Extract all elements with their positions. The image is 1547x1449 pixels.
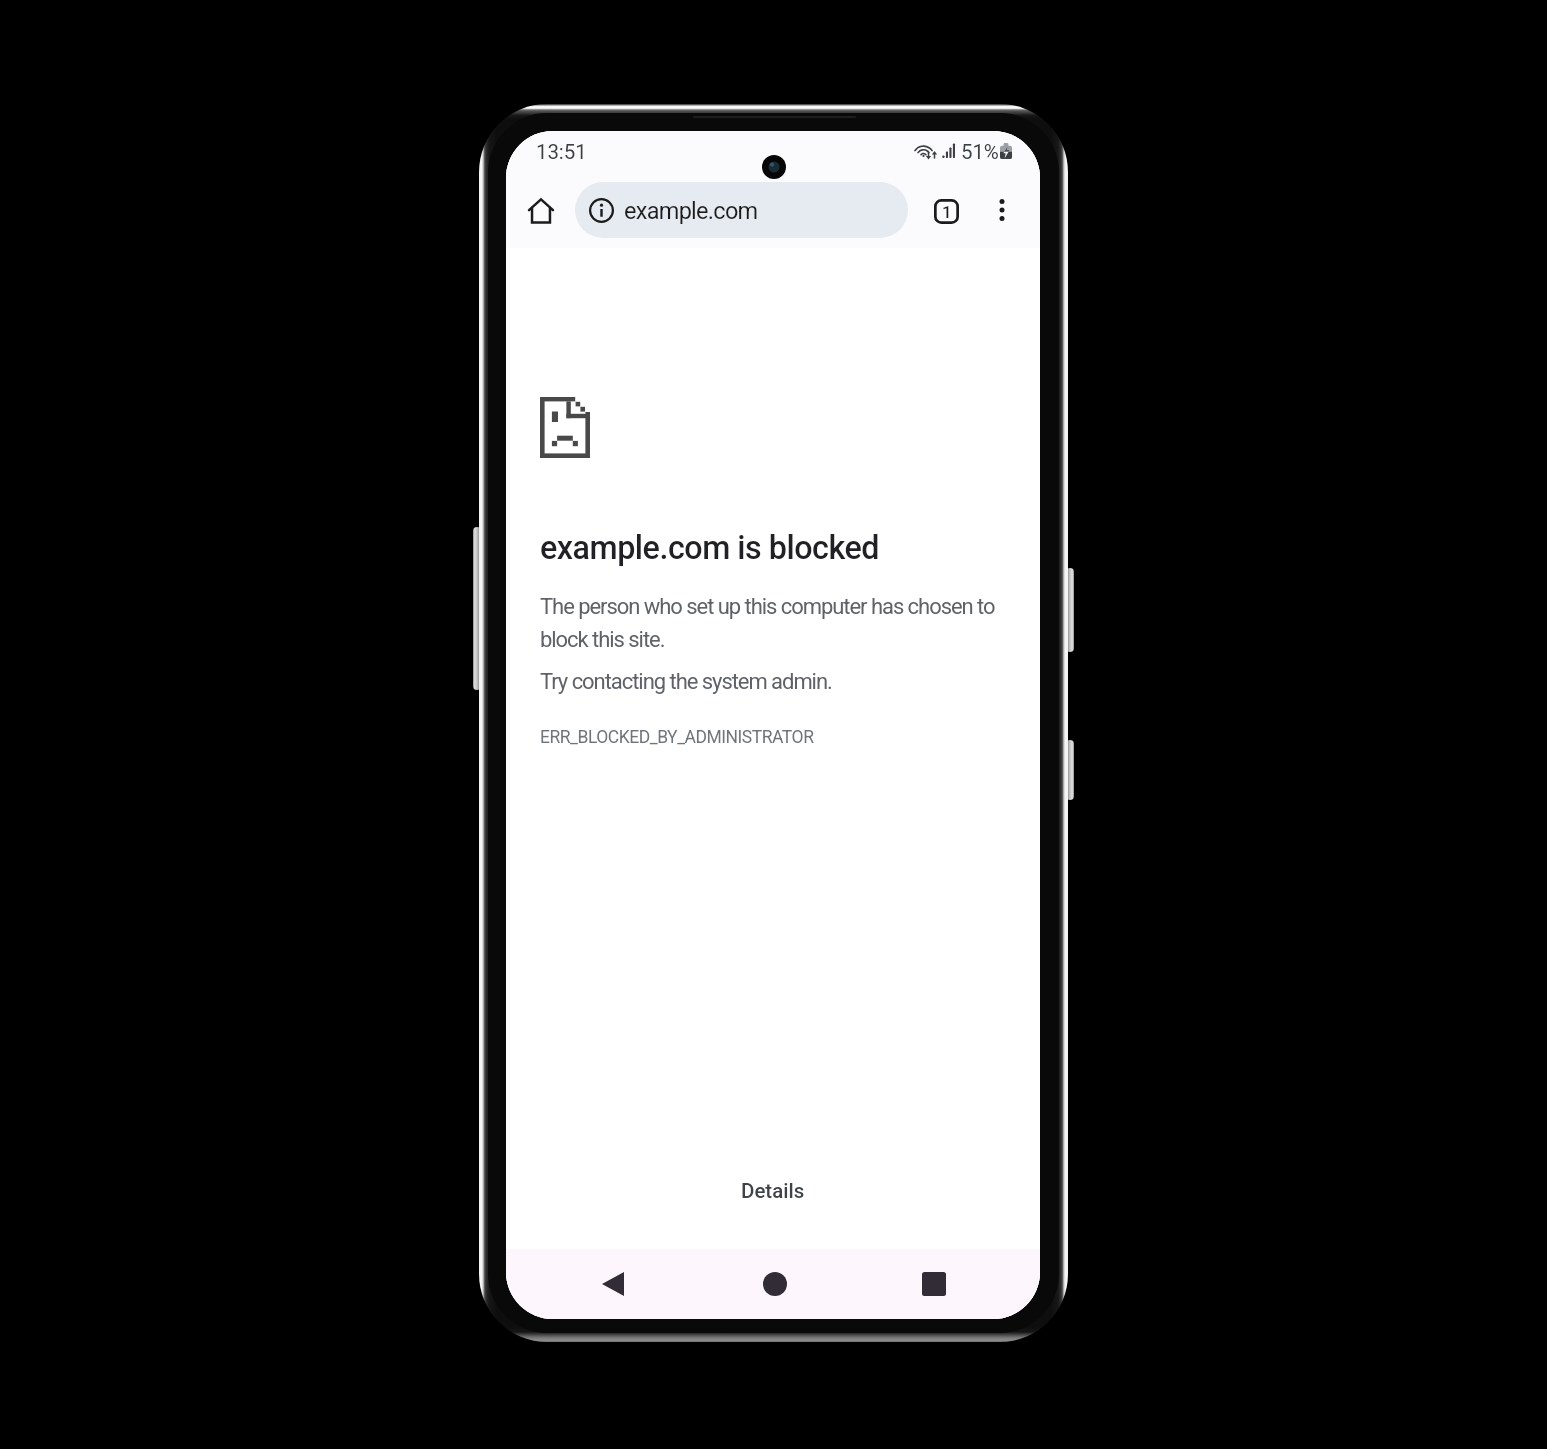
button[interactable]: More options [979, 187, 1025, 233]
button[interactable]: Back [585, 1249, 641, 1319]
staticText: example.com [624, 197, 758, 225]
staticText: ERR_BLOCKED_BY_ADMINISTRATOR [540, 727, 814, 748]
staticText: example.com is blocked [540, 529, 879, 567]
button[interactable]: Home [518, 188, 563, 233]
button[interactable]: Recent apps [906, 1249, 962, 1319]
staticText: The person who set up this computer has … [540, 594, 1002, 653]
staticText: Try contacting the system admin. [540, 669, 832, 695]
button[interactable]: Switch tabs, 1 open [923, 188, 970, 235]
button[interactable]: example.com [575, 182, 908, 238]
button[interactable]: Home [747, 1249, 803, 1319]
button[interactable]: Details [506, 1179, 1040, 1219]
staticText: Details [741, 1179, 805, 1203]
staticText: 13:51 [536, 140, 587, 164]
staticText: 51% [961, 140, 999, 164]
staticText: 1 [942, 202, 952, 222]
